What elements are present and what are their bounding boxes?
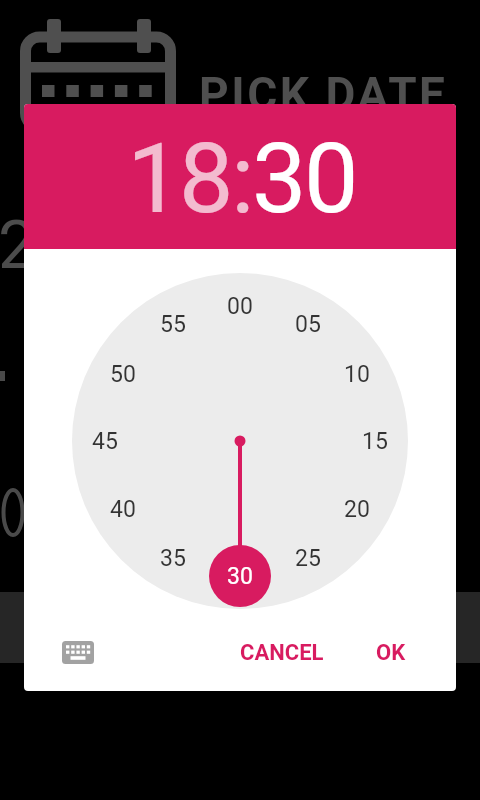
staticText: OK bbox=[376, 640, 406, 666]
staticText: 40 bbox=[110, 496, 136, 523]
button[interactable]: 15 bbox=[345, 421, 405, 461]
staticText: 15 bbox=[362, 428, 388, 455]
button[interactable]: OK bbox=[346, 629, 436, 676]
staticText: CANCEL bbox=[240, 640, 324, 666]
staticText: 35 bbox=[160, 545, 186, 572]
button[interactable]: 20 bbox=[327, 489, 387, 529]
button[interactable] bbox=[62, 641, 94, 664]
staticText: PICK DATE bbox=[199, 67, 448, 121]
button[interactable]: 35 bbox=[143, 538, 203, 578]
button[interactable]: 10 bbox=[327, 354, 387, 394]
staticText: 30 bbox=[227, 563, 253, 590]
button[interactable]: 55 bbox=[143, 304, 203, 344]
staticText: 05 bbox=[295, 311, 321, 338]
button[interactable]: 50 bbox=[93, 354, 153, 394]
button[interactable]: 40 bbox=[93, 489, 153, 529]
staticText: 25 bbox=[295, 545, 321, 572]
button[interactable]: CANCEL bbox=[222, 629, 342, 676]
button[interactable]: 25 bbox=[278, 538, 338, 578]
button[interactable]: 00 bbox=[210, 286, 270, 326]
staticText: 00 bbox=[227, 293, 253, 320]
button[interactable]: 45 bbox=[75, 421, 135, 461]
button[interactable]: 30 bbox=[210, 556, 270, 596]
button[interactable]: 05 bbox=[278, 304, 338, 344]
staticText: 55 bbox=[160, 311, 186, 338]
staticText: 18:30 bbox=[127, 122, 357, 236]
staticText: 20 bbox=[344, 496, 370, 523]
staticText: 50 bbox=[110, 361, 136, 388]
staticText: 45 bbox=[92, 428, 118, 455]
staticText: 2 bbox=[0, 206, 36, 285]
staticText: 10 bbox=[344, 361, 370, 388]
